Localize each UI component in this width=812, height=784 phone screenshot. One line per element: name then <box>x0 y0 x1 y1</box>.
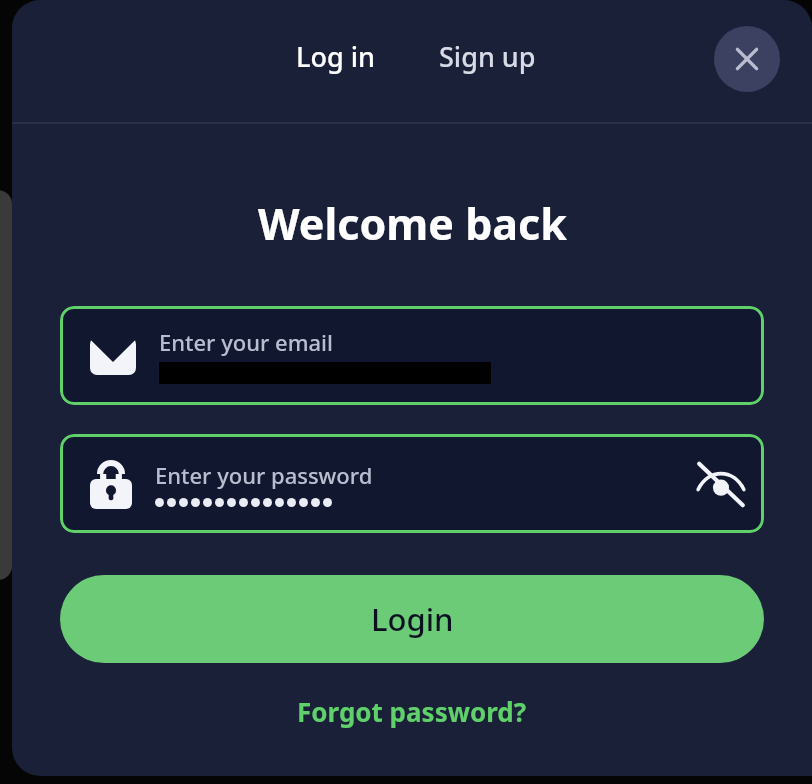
staticText: Forgot password? <box>297 694 527 729</box>
staticText: Sign up <box>439 38 536 75</box>
staticText: Welcome back <box>258 194 567 253</box>
staticText: Login <box>371 598 454 640</box>
button[interactable]: Enter your password <box>60 434 764 533</box>
button[interactable]: Login <box>60 575 764 663</box>
button[interactable]: Enter your email <box>60 306 764 405</box>
button[interactable]: Sign up <box>425 38 550 75</box>
button[interactable]: Forgot password? <box>285 688 539 735</box>
button[interactable]: Close <box>714 26 780 92</box>
button[interactable]: Log in <box>275 38 395 122</box>
staticText: Enter your email <box>159 327 333 357</box>
button[interactable]: Show password <box>690 453 752 515</box>
staticText: Log in <box>296 38 375 75</box>
staticText: Enter your password <box>155 460 373 490</box>
